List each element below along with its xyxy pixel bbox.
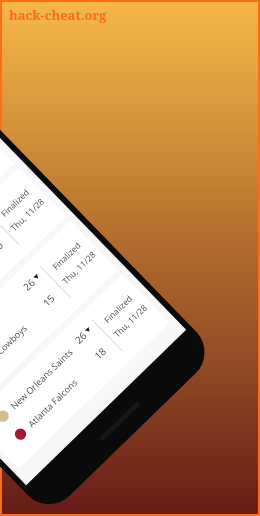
staticText: Thu, 11/28 — [111, 302, 150, 340]
staticText: 26 — [20, 275, 38, 293]
staticText: Finalized — [101, 292, 136, 326]
staticText: Atlanta Falcons — [25, 375, 80, 429]
button[interactable]: Philadelphia Eagles — [0, 167, 66, 363]
button[interactable]: Buffalo Bills — [0, 221, 118, 416]
button[interactable]: New Orleans Saints — [0, 274, 169, 469]
staticText: 15 — [39, 291, 58, 309]
staticText: hack-cheat.org — [9, 6, 107, 24]
staticText: Thu, 11/28 — [8, 195, 47, 234]
staticText: Thu, 11/28 — [60, 248, 99, 287]
staticText: Dallas Cowboys — [0, 322, 29, 376]
staticText: 26 — [71, 328, 90, 347]
staticText: Finalized — [0, 186, 33, 220]
staticText: Finalized — [50, 239, 84, 273]
staticText: 18 — [91, 344, 109, 362]
staticText: New Orleans Saints — [8, 346, 75, 411]
button[interactable]: Kansas City Chiefs — [0, 114, 15, 309]
staticText: 20 — [0, 238, 6, 256]
